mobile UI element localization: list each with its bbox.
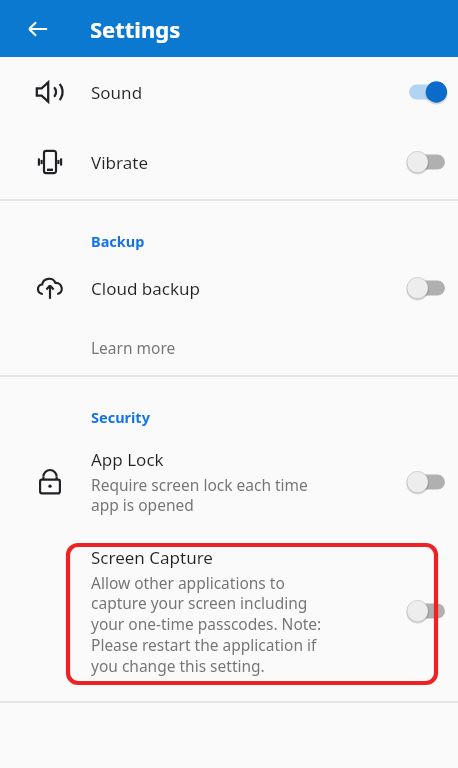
staticText: Backup — [91, 231, 145, 251]
button[interactable]: Toggle off — [404, 273, 450, 303]
staticText: Screen Capture — [91, 546, 213, 569]
staticText: Vibrate — [91, 151, 148, 174]
staticText: Cloud backup — [91, 277, 200, 300]
button[interactable]: Toggle off — [404, 596, 450, 626]
button[interactable]: Vibrate — [0, 127, 458, 197]
button[interactable]: Sound — [0, 57, 458, 127]
staticText: Require screen lock each time app is ope… — [91, 474, 308, 516]
button[interactable]: Cloud backup — [0, 257, 458, 319]
button[interactable]: App Lock — [0, 433, 458, 531]
button[interactable]: Toggle on — [404, 77, 450, 107]
staticText: App Lock — [91, 448, 164, 471]
staticText: Allow other applications to capture your… — [91, 572, 322, 677]
button[interactable]: Toggle off — [404, 467, 450, 497]
button[interactable]: Screen Capture — [0, 531, 458, 691]
staticText: Learn more — [91, 337, 176, 358]
staticText: Sound — [91, 81, 143, 104]
button[interactable]: Toggle off — [404, 147, 450, 177]
button[interactable]: Back — [14, 5, 62, 53]
staticText: Settings — [90, 14, 181, 44]
button[interactable]: Learn more — [0, 319, 458, 375]
staticText: Security — [91, 407, 150, 427]
